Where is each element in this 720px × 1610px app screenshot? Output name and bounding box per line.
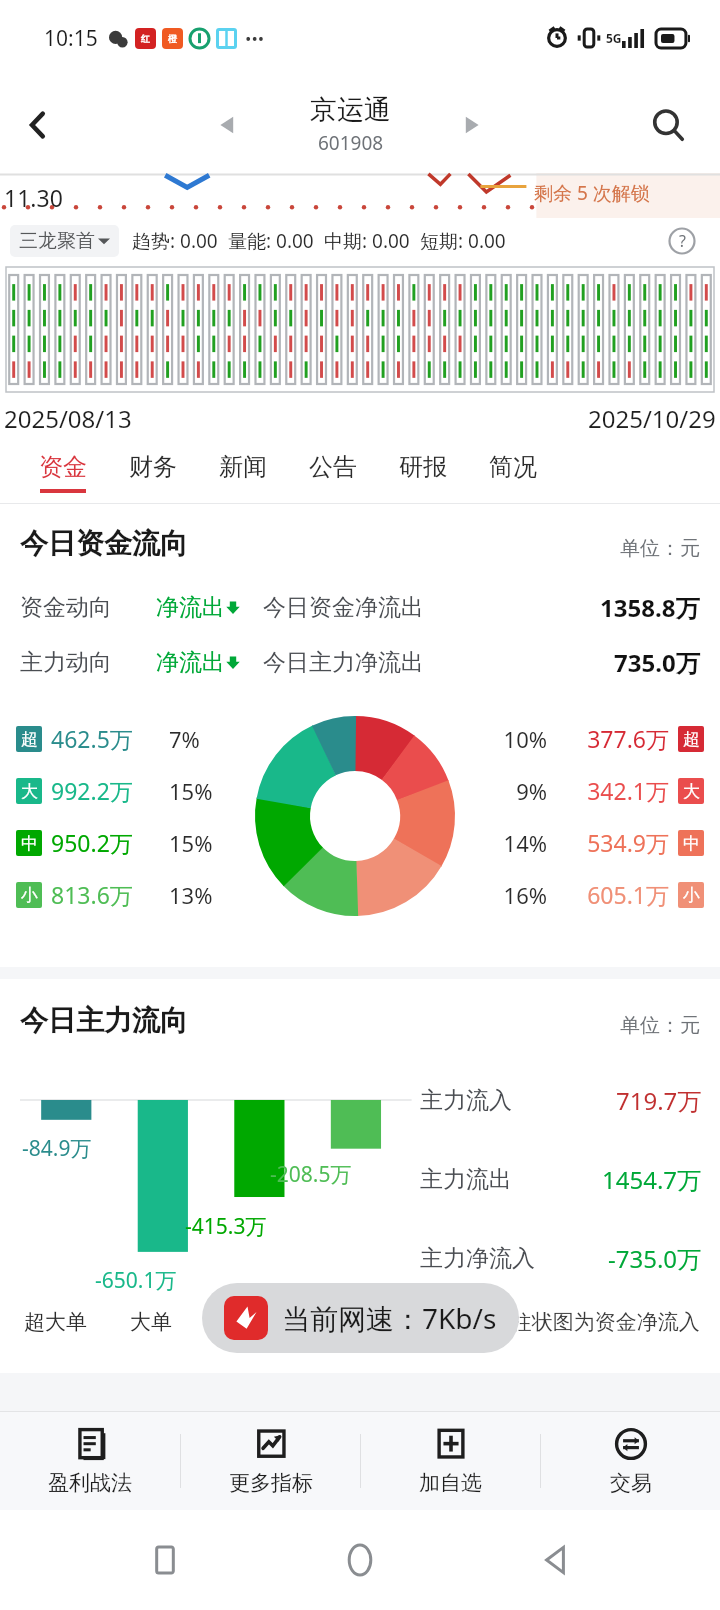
staticText: 5G — [606, 30, 622, 46]
staticText: 小 — [683, 885, 700, 906]
staticText: 1358.8万 — [600, 591, 700, 624]
button[interactable]: 加自选 — [361, 1412, 540, 1510]
staticText: 中单 — [236, 1309, 342, 1335]
staticText: 注:左侧柱状图为资金净流入 — [442, 1307, 700, 1336]
staticText: ••• — [245, 27, 265, 50]
button[interactable]: 简况 — [468, 441, 558, 503]
button[interactable]: 资金 — [18, 441, 108, 503]
staticText: 9% — [499, 776, 547, 806]
button[interactable]: Previous stock — [200, 98, 254, 152]
staticText: 超大单 — [24, 1309, 130, 1335]
staticText: 小 — [21, 885, 38, 906]
staticText: 大单 — [130, 1309, 236, 1335]
staticText: 红 — [141, 33, 150, 44]
staticText: 15% — [169, 776, 213, 806]
staticText: 超 — [683, 729, 700, 750]
staticText: 趋势: 0.00 — [132, 228, 218, 254]
staticText: 短期: 0.00 — [420, 228, 506, 254]
staticText: 京运通 — [310, 93, 391, 127]
staticText: 今日资金净流出 — [263, 593, 424, 622]
button[interactable]: Search — [638, 95, 698, 155]
staticText: 992.2万 — [51, 775, 161, 806]
staticText: 10:15 — [44, 24, 98, 53]
staticText: 净流出 — [156, 593, 225, 622]
staticText: -415.3万 — [185, 1212, 267, 1241]
staticText: 净流出 — [156, 648, 225, 677]
staticText: -84.9万 — [22, 1134, 92, 1163]
staticText: 盈利战法 — [48, 1470, 132, 1496]
staticText: 橙 — [168, 33, 177, 44]
staticText: 813.6万 — [51, 879, 161, 910]
button[interactable]: 新闻 — [198, 441, 288, 503]
staticText: 534.9万 — [559, 827, 669, 858]
staticText: 研报 — [399, 452, 447, 482]
staticText: 超 — [21, 729, 38, 750]
staticText: 今日主力净流出 — [263, 648, 424, 677]
button[interactable]: 研报 — [378, 441, 468, 503]
staticText: 单位：元 — [620, 536, 700, 561]
staticText: 16% — [499, 880, 547, 910]
staticText: 中 — [21, 833, 38, 854]
staticText: 377.6万 — [559, 723, 669, 754]
staticText: 11.30 — [4, 182, 63, 213]
staticText: 剩余 5 次解锁 — [534, 180, 650, 206]
staticText: 财务 — [129, 452, 177, 482]
staticText: -735.0万 — [608, 1242, 702, 1275]
staticText: ? — [679, 230, 686, 252]
staticText: 主力净流入 — [420, 1244, 535, 1273]
button[interactable]: Back — [10, 97, 66, 153]
staticText: 交易 — [610, 1470, 652, 1496]
staticText: 当前网速：7Kb/s — [282, 1299, 497, 1337]
staticText: 1454.7万 — [602, 1163, 702, 1196]
staticText: 今日资金流向 — [20, 526, 188, 561]
staticText: 小单 — [342, 1309, 442, 1335]
button[interactable]: 更多指标 — [181, 1412, 360, 1510]
button[interactable]: 公告 — [288, 441, 378, 503]
staticText: 中 — [683, 833, 700, 854]
staticText: 342.1万 — [559, 775, 669, 806]
staticText: 今日主力流向 — [20, 1003, 188, 1038]
staticText: 单位：元 — [620, 1013, 700, 1038]
staticText: 资金动向 — [20, 593, 112, 622]
staticText: 2025/08/13 — [4, 402, 132, 435]
button[interactable]: 三龙聚首 — [10, 225, 119, 257]
button[interactable]: Back — [525, 1530, 585, 1590]
staticText: 加自选 — [419, 1470, 482, 1496]
button[interactable]: Recents — [135, 1530, 195, 1590]
button[interactable]: Next stock — [445, 98, 499, 152]
staticText: 大 — [683, 781, 700, 802]
staticText: 7% — [169, 724, 200, 754]
staticText: 719.7万 — [616, 1084, 702, 1117]
staticText: 13% — [169, 880, 213, 910]
button[interactable]: Help — [662, 221, 702, 261]
staticText: 14% — [499, 828, 547, 858]
staticText: 三龙聚首 — [19, 229, 95, 253]
staticText: 605.1万 — [559, 879, 669, 910]
button[interactable]: 盈利战法 — [0, 1412, 180, 1510]
staticText: -650.1万 — [95, 1266, 177, 1295]
staticText: 462.5万 — [51, 723, 161, 754]
staticText: 简况 — [489, 452, 537, 482]
staticText: 10% — [499, 724, 547, 754]
staticText: 量能: 0.00 — [228, 228, 314, 254]
button[interactable]: 财务 — [108, 441, 198, 503]
staticText: -208.5万 — [270, 1160, 352, 1189]
staticText: 大 — [21, 781, 38, 802]
staticText: 735.0万 — [614, 646, 700, 679]
button[interactable]: 交易 — [541, 1412, 720, 1510]
staticText: 主力流入 — [420, 1086, 512, 1115]
staticText: 2025/10/29 — [588, 402, 716, 435]
staticText: 资金 — [39, 452, 87, 482]
button[interactable]: Home — [330, 1530, 390, 1590]
staticText: 主力流出 — [420, 1165, 512, 1194]
staticText: 主力动向 — [20, 648, 112, 677]
staticText: 公告 — [309, 452, 357, 482]
staticText: 601908 — [318, 130, 384, 156]
staticText: 950.2万 — [51, 827, 161, 858]
staticText: 15% — [169, 828, 213, 858]
staticText: 更多指标 — [229, 1470, 313, 1496]
staticText: 中期: 0.00 — [324, 228, 410, 254]
staticText: 新闻 — [219, 452, 267, 482]
